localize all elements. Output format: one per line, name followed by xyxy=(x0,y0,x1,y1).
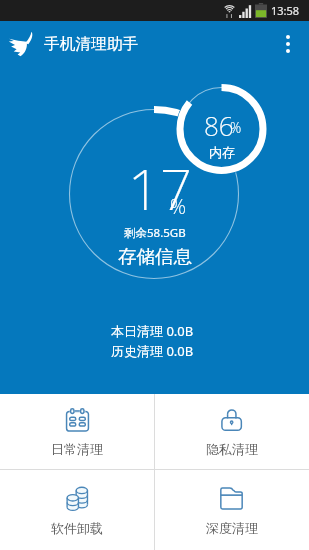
staticText: % xyxy=(230,118,242,137)
staticText: 历史清理 0.0B xyxy=(111,342,194,360)
staticText: 隐私清理 xyxy=(206,441,258,457)
staticText: 86 xyxy=(204,108,234,143)
staticText: 13:58 xyxy=(271,3,300,18)
staticText: 存储信息 xyxy=(118,245,192,268)
button[interactable]: 隐私清理 xyxy=(154,394,309,469)
button[interactable]: 日常清理 xyxy=(0,394,154,469)
staticText: % xyxy=(170,193,187,220)
button[interactable]: 软件卸载 xyxy=(0,470,154,550)
staticText: 本日清理 0.0B xyxy=(111,322,194,340)
staticText: 17 xyxy=(128,150,192,226)
staticText: 剩余58.5GB xyxy=(124,225,186,241)
staticText: 深度清理 xyxy=(206,520,258,536)
button[interactable]: 深度清理 xyxy=(154,470,309,550)
staticText: 日常清理 xyxy=(51,441,103,457)
button[interactable]: More options xyxy=(267,21,309,67)
staticText: 手机清理助手 xyxy=(44,34,139,54)
staticText: 软件卸载 xyxy=(51,520,103,536)
staticText: 内存 xyxy=(209,144,235,160)
